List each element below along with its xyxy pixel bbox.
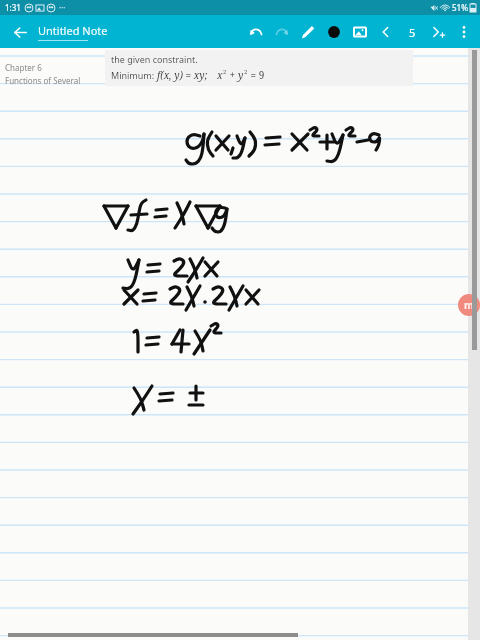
staticText: Minimum: xyxy=(111,69,157,81)
staticText: 51% xyxy=(452,2,468,13)
staticText: x xyxy=(217,68,223,82)
button[interactable]: Assistant xyxy=(458,294,480,316)
button[interactable]: Undo xyxy=(243,19,269,45)
staticText: ··· xyxy=(59,2,66,13)
staticText: + xyxy=(227,68,238,82)
staticText: y xyxy=(238,68,244,82)
button[interactable]: Previous page xyxy=(373,19,399,45)
staticText: 2 xyxy=(244,68,248,76)
staticText: Untitled Note xyxy=(38,23,108,38)
button[interactable]: Insert image xyxy=(347,19,373,45)
button[interactable]: Back xyxy=(7,19,33,45)
button[interactable]: Untitled Note xyxy=(38,23,108,41)
button[interactable]: 5 xyxy=(399,19,425,45)
button[interactable]: Add page xyxy=(425,19,451,45)
staticText: = 9 xyxy=(248,68,265,82)
staticText: 1:31 xyxy=(5,2,21,13)
staticText: 2 xyxy=(223,68,227,76)
staticText: Chapter 6 xyxy=(5,62,42,73)
staticText: Functions of Several xyxy=(5,75,81,86)
staticText: 5 xyxy=(409,25,416,40)
staticText: f(x, y) = xy; xyxy=(157,68,208,82)
button[interactable]: the given constraint. xyxy=(105,50,413,86)
button[interactable]: Pen xyxy=(295,19,321,45)
staticText: m xyxy=(464,298,474,312)
button[interactable]: Redo xyxy=(269,19,295,45)
button[interactable]: Color xyxy=(321,19,347,45)
staticText: the given constraint. xyxy=(111,53,198,65)
button[interactable]: More options xyxy=(451,19,477,45)
